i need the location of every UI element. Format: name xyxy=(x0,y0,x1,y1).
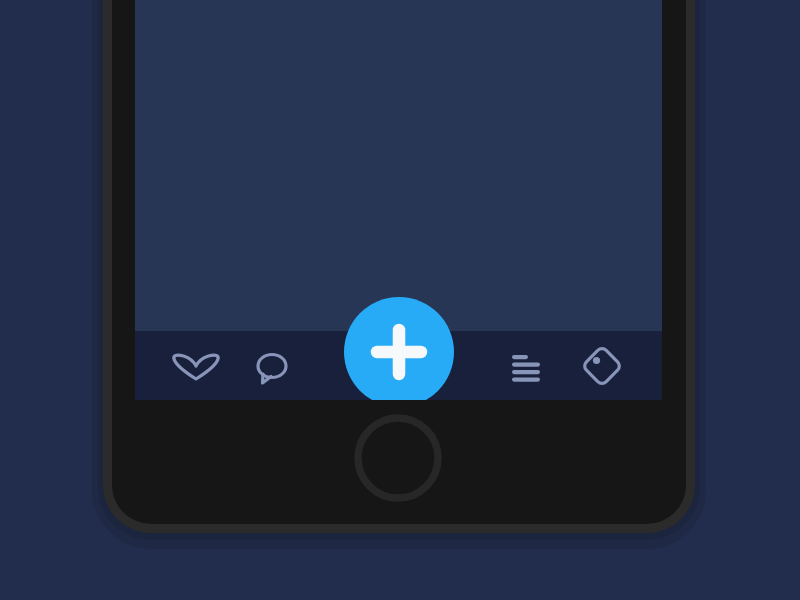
button[interactable]: Comments xyxy=(244,336,300,392)
button[interactable]: Tags xyxy=(574,336,630,392)
button[interactable]: Feed xyxy=(498,336,554,392)
button[interactable]: Likes xyxy=(168,336,224,392)
button[interactable]: Add new xyxy=(332,297,466,400)
